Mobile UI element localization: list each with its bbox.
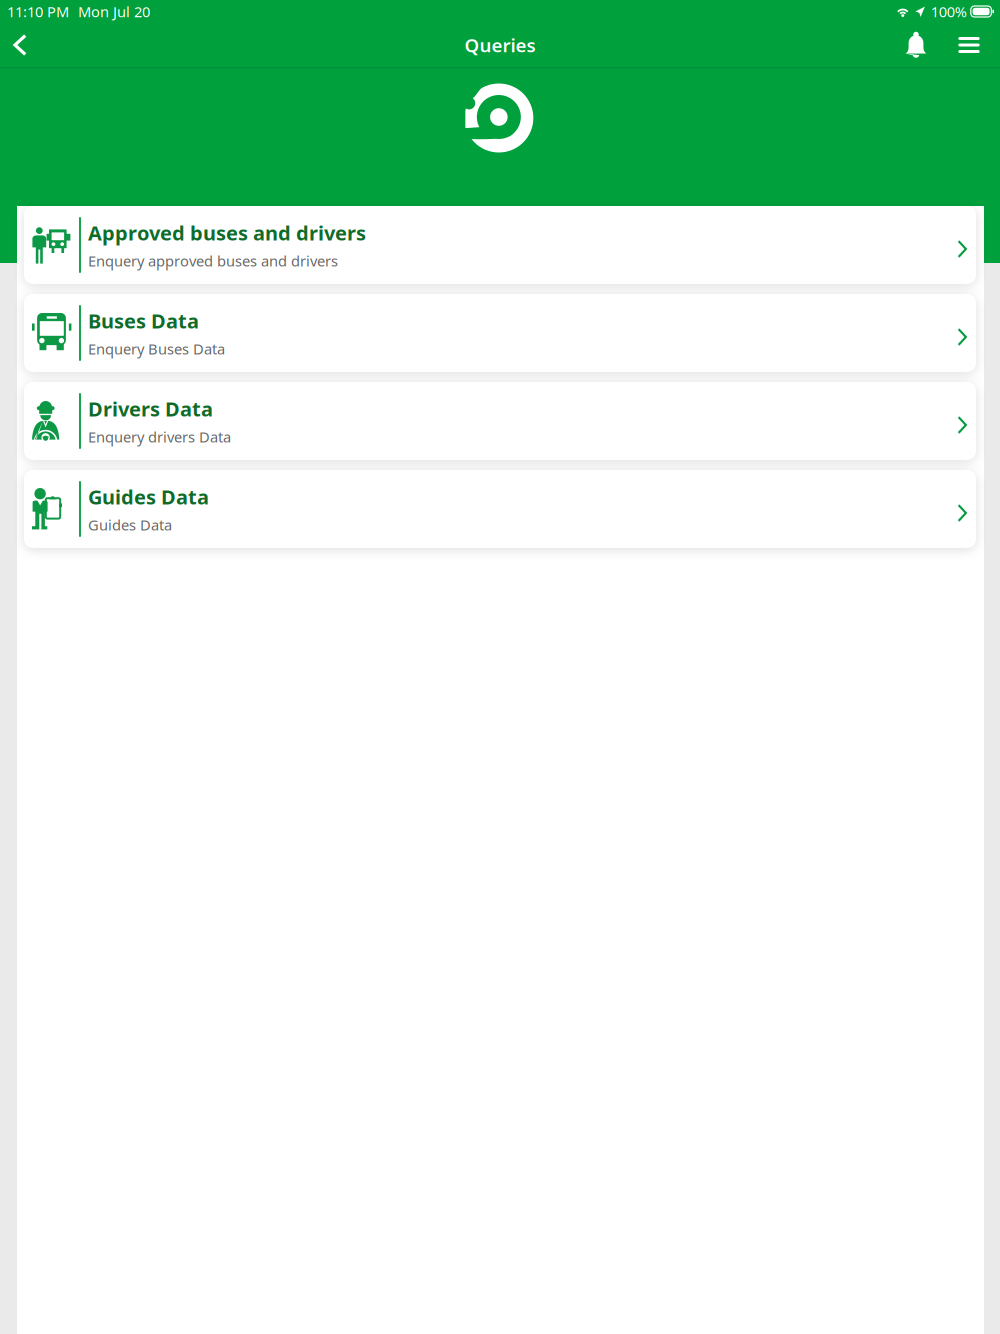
staticText: Queries (464, 33, 535, 57)
button[interactable]: Back (0, 23, 40, 67)
button[interactable]: Buses Data (24, 294, 976, 372)
staticText: Enquery Buses Data (88, 339, 225, 358)
staticText: Guides Data (88, 515, 172, 534)
button[interactable]: Drivers Data (24, 382, 976, 460)
staticText: 100% (931, 2, 967, 21)
staticText: Enquery drivers Data (88, 427, 231, 446)
staticText: Enquery approved buses and drivers (88, 251, 338, 270)
staticText: Drivers Data (88, 395, 213, 422)
staticText: Buses Data (88, 307, 199, 334)
staticText: Approved buses and drivers (88, 219, 366, 246)
staticText: Mon Jul 20 (78, 2, 150, 21)
button[interactable]: Approved buses and drivers (24, 206, 976, 284)
button[interactable]: Menu (947, 23, 991, 67)
button[interactable]: Guides Data (24, 470, 976, 548)
staticText: Guides Data (88, 483, 209, 510)
button[interactable]: Notifications (885, 23, 947, 67)
staticText: 11:10 PM (7, 2, 69, 21)
